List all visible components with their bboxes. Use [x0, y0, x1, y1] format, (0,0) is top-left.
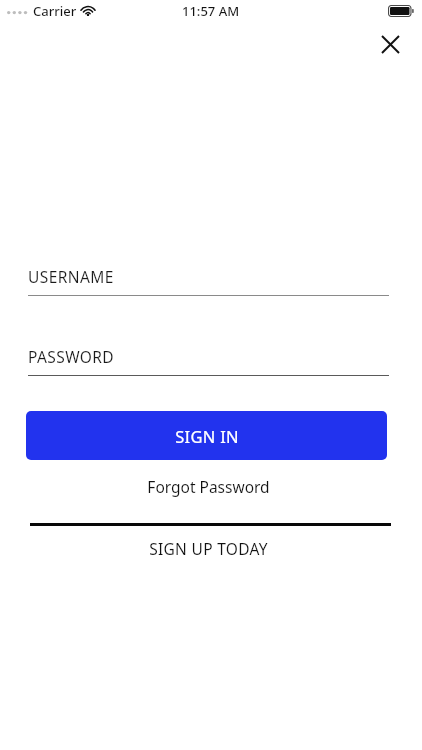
- staticText: 11:57 AM: [182, 2, 240, 20]
- staticText: Forgot Password: [147, 476, 270, 497]
- button[interactable]: Close: [372, 26, 408, 62]
- staticText: SIGN UP TODAY: [149, 538, 268, 559]
- button[interactable]: USERNAME: [28, 266, 389, 296]
- button[interactable]: SIGN UP TODAY: [28, 533, 389, 563]
- button[interactable]: SIGN IN: [26, 411, 387, 460]
- button[interactable]: Forgot Password: [28, 469, 389, 503]
- staticText: PASSWORD: [28, 346, 115, 367]
- button[interactable]: PASSWORD: [28, 346, 389, 376]
- staticText: Carrier: [33, 2, 77, 20]
- staticText: USERNAME: [28, 266, 114, 287]
- staticText: SIGN IN: [175, 425, 239, 447]
